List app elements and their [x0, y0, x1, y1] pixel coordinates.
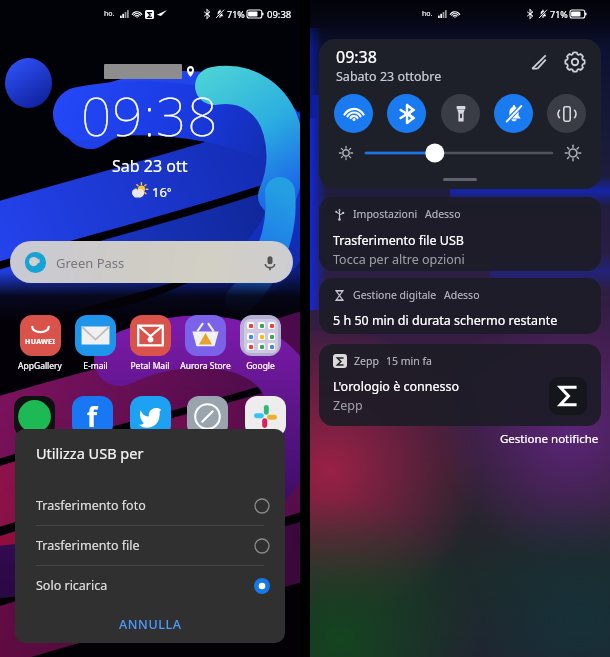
button[interactable] [245, 396, 286, 437]
staticText: 16 [152, 183, 167, 201]
button[interactable]: Trasferimento file [15, 526, 285, 565]
staticText: Utilizza USB per [36, 443, 144, 463]
button[interactable]: Silenzioso [494, 94, 533, 133]
staticText: L'orologio è connesso [333, 378, 460, 395]
staticText: 5 h 50 min di durata schermo restante [333, 312, 558, 329]
button[interactable]: E-mail [69, 315, 121, 372]
button[interactable]: Impostazioni [319, 197, 601, 271]
staticText: Trasferimento foto [36, 497, 146, 514]
staticText: Green Pass [56, 254, 125, 272]
staticText: 09:38 [336, 46, 377, 68]
staticText: 15 min fa [386, 354, 432, 368]
staticText: AppGallery [18, 360, 62, 372]
staticText: Sab 23 ott [112, 155, 188, 177]
staticText: ANNULLA [119, 616, 182, 633]
staticText: Gestione notifiche [500, 431, 599, 447]
button[interactable]: Bluetooth [387, 94, 426, 133]
button[interactable]: Luminosità [366, 144, 552, 162]
button[interactable]: Zepp [319, 344, 601, 426]
staticText: Sabato 23 ottobre [336, 68, 442, 85]
button[interactable]: Green Pass [10, 241, 293, 283]
staticText: 09:38 [267, 8, 292, 21]
staticText: Petal Mail [130, 360, 170, 372]
staticText: Aurora Store [180, 360, 231, 372]
button[interactable]: Gestione digitale [319, 278, 601, 334]
staticText: ho. [422, 9, 433, 19]
staticText: Adesso [425, 207, 461, 221]
staticText: Trasferimento file USB [333, 232, 464, 249]
staticText: 71% [550, 8, 568, 20]
staticText: 09:38 [81, 79, 219, 151]
button[interactable]: Vibrazione [547, 94, 586, 133]
button[interactable]: Wi-Fi [334, 94, 373, 133]
staticText: Tocca per altre opzioni [333, 251, 465, 268]
button[interactable]: Gestione notifiche [500, 431, 601, 447]
button[interactable]: HUAWEI [14, 315, 66, 372]
button[interactable] [14, 396, 55, 437]
staticText: HUAWEI [25, 337, 56, 347]
button[interactable] [130, 396, 171, 437]
staticText: Adesso [444, 288, 480, 302]
staticText: 71% [227, 8, 245, 20]
button[interactable]: Modifica [527, 50, 551, 74]
button[interactable]: ANNULLA [105, 608, 196, 641]
button[interactable]: Aurora Store [179, 315, 231, 372]
button[interactable]: Torcia [441, 94, 480, 133]
button[interactable]: f [72, 396, 113, 437]
staticText: ° [167, 185, 172, 199]
staticText: ho. [104, 9, 115, 19]
button[interactable]: Trasferimento foto [15, 486, 285, 525]
button[interactable]: Zepp [549, 377, 587, 415]
staticText: Google [246, 360, 275, 372]
button[interactable]: Solo ricarica [15, 566, 285, 605]
staticText: E-mail [83, 360, 108, 372]
staticText: Zepp [354, 354, 379, 368]
button[interactable]: Impostazioni [563, 50, 587, 74]
staticText: Solo ricarica [36, 577, 108, 594]
staticText: Trasferimento file [36, 537, 140, 554]
button[interactable]: Petal Mail [124, 315, 176, 372]
button[interactable] [187, 396, 228, 437]
button[interactable]: Google [234, 315, 286, 372]
staticText: Impostazioni [353, 207, 418, 221]
staticText: f [87, 399, 98, 434]
staticText: Zepp [333, 397, 363, 414]
staticText: Gestione digitale [353, 288, 437, 302]
